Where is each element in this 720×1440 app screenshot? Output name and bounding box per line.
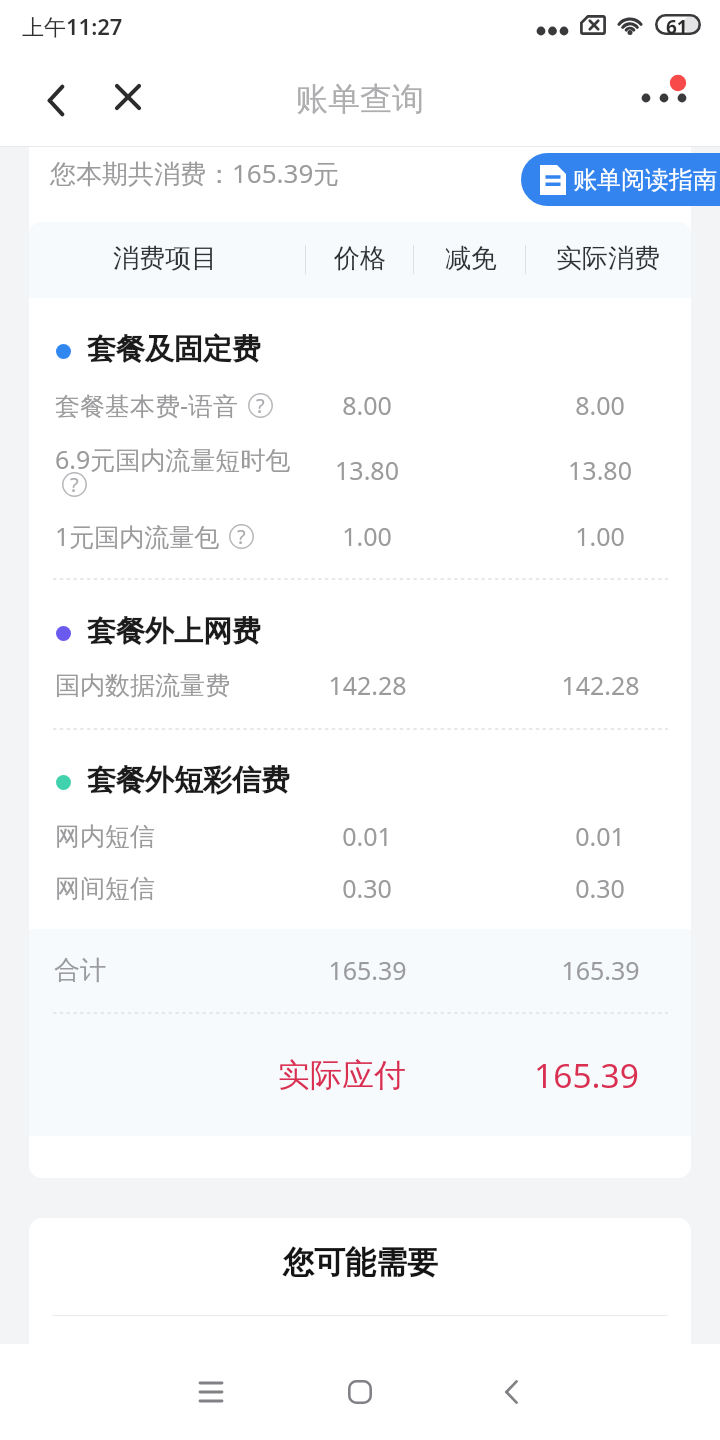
staticText: 消费项目	[113, 242, 217, 275]
staticText: 6.9元国内流量短时包	[55, 442, 291, 476]
button[interactable]: Close	[102, 71, 154, 123]
staticText: 减免	[445, 242, 497, 275]
button[interactable]	[29, 510, 691, 562]
staticText: 165.39	[328, 953, 407, 987]
button[interactable]: Help	[229, 524, 254, 549]
staticText: 价格	[334, 242, 386, 275]
button[interactable]: Recents	[171, 1352, 251, 1432]
staticText: 8.00	[342, 388, 392, 422]
button[interactable]: Back	[471, 1352, 551, 1432]
staticText: 0.30	[342, 871, 392, 905]
staticText: 13.80	[335, 453, 399, 487]
staticText: 61	[666, 14, 688, 35]
button[interactable]	[29, 862, 691, 914]
staticText: 13.80	[568, 453, 632, 487]
staticText: 实际应付	[278, 1055, 406, 1095]
staticText: 142.28	[561, 668, 640, 702]
staticText: ?	[237, 523, 246, 548]
staticText: 0.30	[575, 871, 625, 905]
staticText: 0.01	[342, 819, 392, 853]
staticText: 套餐基本费-语音	[55, 388, 239, 422]
staticText: 142.28	[328, 668, 407, 702]
staticText: 您可能需要	[283, 1243, 438, 1282]
staticText: ?	[70, 471, 79, 496]
staticText: 165.39	[534, 1052, 639, 1098]
button[interactable]	[29, 659, 691, 711]
button[interactable]: Help	[248, 393, 273, 418]
staticText: 套餐外上网费	[87, 613, 261, 650]
button[interactable]: 账单阅读指南	[521, 153, 720, 206]
staticText: 8.00	[575, 388, 625, 422]
button[interactable]: Help	[62, 472, 87, 497]
staticText: 1元国内流量包	[55, 519, 220, 553]
button[interactable]	[29, 379, 691, 431]
staticText: 1.00	[342, 519, 392, 553]
button[interactable]: More options	[630, 68, 694, 132]
button[interactable]: Back	[30, 74, 82, 126]
button[interactable]	[29, 432, 691, 508]
staticText: 套餐及固定费	[87, 331, 261, 368]
staticText: 1.00	[575, 519, 625, 553]
staticText: 上午11:27	[22, 11, 123, 41]
button[interactable]	[29, 810, 691, 862]
staticText: 0.01	[575, 819, 625, 853]
staticText: 网间短信	[55, 873, 155, 904]
staticText: 账单阅读指南	[573, 165, 717, 195]
staticText: 实际消费	[556, 242, 660, 275]
button[interactable]: Home	[320, 1352, 400, 1432]
staticText: 您本期共消费：165.39元	[50, 155, 340, 191]
button[interactable]: 您可能需要	[29, 1228, 691, 1296]
staticText: 账单查询	[296, 79, 424, 119]
staticText: 合计	[54, 954, 106, 987]
staticText: ?	[256, 392, 265, 417]
staticText: 国内数据流量费	[55, 670, 230, 701]
staticText: 165.39	[561, 953, 640, 987]
staticText: 套餐外短彩信费	[87, 762, 290, 799]
staticText: 网内短信	[55, 821, 155, 852]
